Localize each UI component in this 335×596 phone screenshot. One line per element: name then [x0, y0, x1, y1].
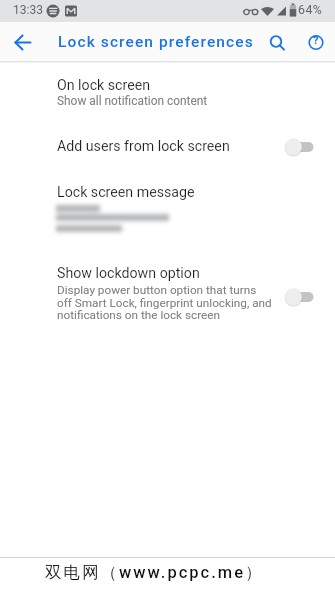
button[interactable]: Add users from lock screen: [0, 126, 335, 168]
staticText: ?: [313, 34, 319, 47]
button[interactable]: Show lockdown option: [0, 256, 335, 332]
staticText: 13:33: [13, 3, 43, 17]
staticText: Lock screen preferences: [58, 33, 254, 51]
button[interactable]: [283, 136, 316, 158]
staticText: On lock screen: [57, 77, 151, 94]
button[interactable]: [283, 286, 316, 308]
staticText: Show lockdown option: [57, 265, 200, 282]
staticText: Lock screen message: [57, 184, 195, 201]
staticText: notifications on the lock screen: [57, 308, 220, 322]
staticText: Display power button option that turns: [57, 283, 257, 297]
button[interactable]: Lock screen message: [0, 176, 335, 250]
staticText: off Smart Lock, fingerprint unlocking, a…: [57, 296, 272, 310]
button[interactable]: [260, 26, 293, 59]
staticText: Show all notification content: [57, 94, 208, 108]
staticText: 64%: [298, 3, 323, 17]
button[interactable]: On lock screen: [0, 70, 335, 114]
staticText: 双电网（www.pcpc.me）: [45, 562, 264, 583]
button[interactable]: ?: [300, 26, 333, 59]
button[interactable]: [6, 26, 39, 59]
staticText: Add users from lock screen: [57, 138, 230, 155]
